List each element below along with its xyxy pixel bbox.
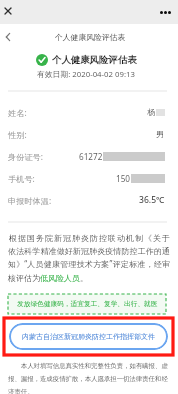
staticText: 150 (116, 173, 131, 184)
staticText: 本人对填写信息真实性和完整性负责，如有瞒报、虚报、漏报，造成疫情扩散，本人愿承担… (8, 361, 170, 394)
staticText: 个人健康风险评估表 (52, 54, 137, 66)
button[interactable]: 发放绿色健康码，适宜复工、复学、出行、就医 (8, 294, 166, 314)
staticText: 个人健康风险评估表 (55, 32, 126, 42)
button[interactable]: 内蒙古自治区新冠肺炎防控工作指挥部文件 (9, 323, 168, 350)
staticText: 申报时体温: (8, 195, 52, 206)
staticText: 61272 (79, 151, 103, 162)
staticText: 36.5℃ (139, 194, 165, 206)
staticText: 内蒙古自治区新冠肺炎防控工作指挥部文件 (22, 332, 155, 341)
staticText: 男 (156, 129, 165, 139)
button[interactable]: Back (1, 30, 15, 44)
staticText: 有效日期: 2020-04-02 09:13 (37, 69, 135, 80)
staticText: 手机号: (8, 173, 35, 184)
staticText: 身份证号: (8, 151, 43, 162)
button[interactable]: More options (160, 5, 171, 19)
staticText: 杨 (147, 107, 156, 117)
staticText: 姓名: (8, 107, 27, 118)
staticText: 性别: (8, 129, 27, 140)
staticText: 根据国务院新冠肺炎防控联动机制《关于依法科学精准做好新冠肺炎疫情防控工作的通知》… (8, 232, 170, 283)
button[interactable]: Close (1, 4, 15, 18)
staticText: 发放绿色健康码，适宜复工、复学、出行、就医 (17, 300, 158, 308)
